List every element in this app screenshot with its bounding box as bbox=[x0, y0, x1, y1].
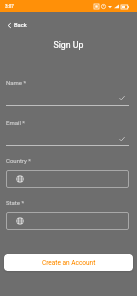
staticText: Name * bbox=[6, 79, 27, 86]
button[interactable]: Back bbox=[6, 22, 27, 29]
staticText: 3:07 bbox=[5, 4, 14, 9]
staticText: Create an Account bbox=[42, 259, 96, 267]
staticText: Back bbox=[14, 22, 27, 29]
button[interactable]: Select state bbox=[6, 212, 129, 230]
staticText: Sign Up bbox=[0, 40, 137, 50]
staticText: State * bbox=[6, 199, 25, 206]
button[interactable]: Select country bbox=[6, 170, 129, 188]
staticText: Email * bbox=[6, 119, 25, 126]
button[interactable]: Create an Account bbox=[4, 254, 133, 271]
staticText: Country * bbox=[6, 157, 31, 164]
